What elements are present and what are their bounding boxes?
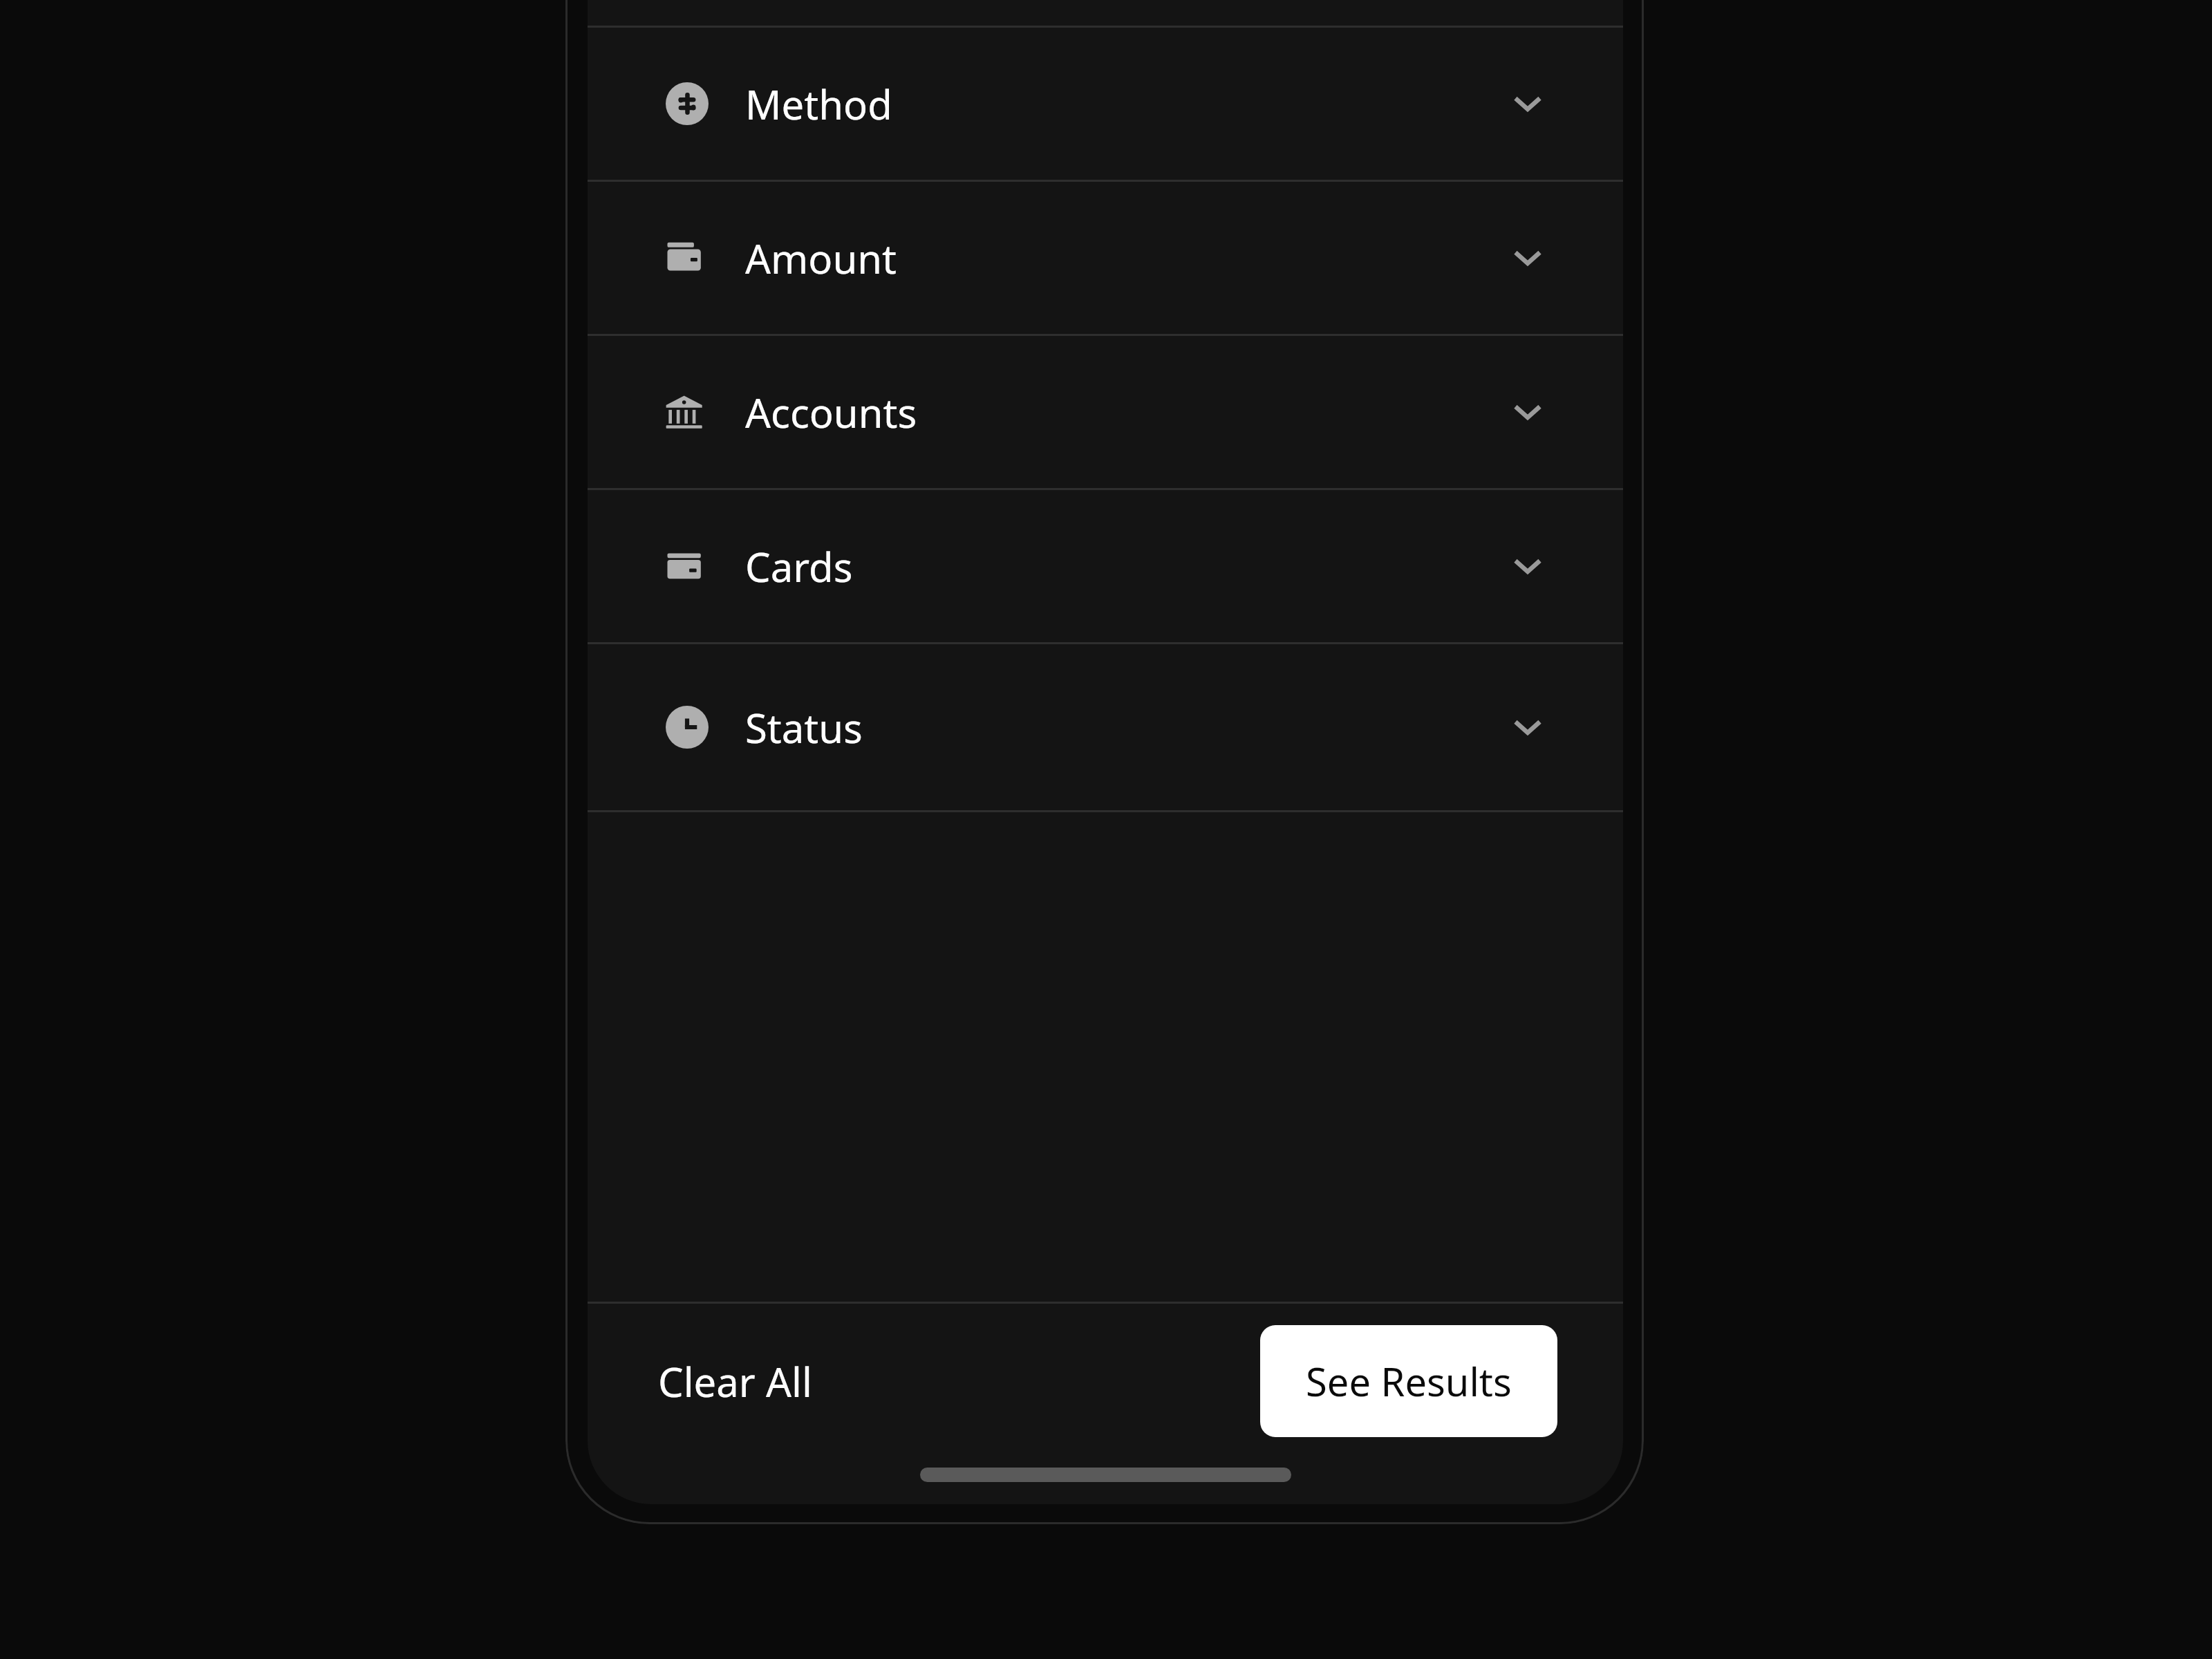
button[interactable]: Status	[588, 644, 1623, 810]
button[interactable]: See Results	[1260, 1325, 1557, 1437]
staticText: Clear All	[658, 1354, 812, 1409]
button[interactable]: Accounts	[588, 336, 1623, 488]
staticText: Status	[745, 700, 863, 755]
button[interactable]: Amount	[588, 182, 1623, 334]
button[interactable]: Cards	[588, 490, 1623, 642]
staticText: Cards	[745, 539, 853, 594]
staticText: Method	[745, 77, 892, 131]
staticText: Amount	[745, 231, 897, 285]
staticText: Accounts	[745, 385, 917, 440]
button[interactable]: Method	[588, 28, 1623, 180]
button[interactable]: Clear All	[643, 1342, 827, 1421]
staticText: See Results	[1306, 1355, 1512, 1407]
